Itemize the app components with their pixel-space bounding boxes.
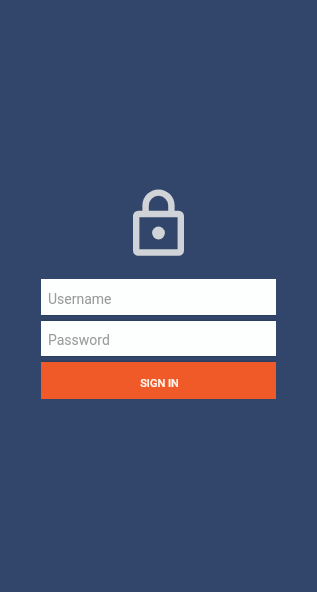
button[interactable]: Password: [41, 321, 276, 356]
staticText: SIGN IN: [140, 377, 179, 390]
staticText: Password: [48, 332, 110, 348]
button[interactable]: SIGN IN: [41, 362, 276, 399]
button[interactable]: Username: [41, 279, 276, 315]
other: Secure login: [131, 186, 187, 256]
staticText: Username: [48, 291, 112, 307]
